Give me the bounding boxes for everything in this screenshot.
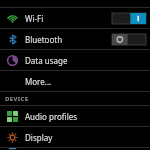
staticText: Bluetooth [25, 34, 112, 45]
staticText: Data usage [25, 55, 150, 66]
staticText: More... [25, 76, 150, 87]
button[interactable]: Toggle off [112, 34, 146, 45]
button[interactable]: More... [0, 71, 150, 91]
button[interactable] [0, 148, 150, 150]
button[interactable]: Display [0, 127, 150, 147]
staticText: DEVICE [5, 95, 29, 103]
button[interactable]: Audio profiles [0, 106, 150, 126]
button[interactable]: Bluetooth [0, 29, 150, 49]
staticText: Audio profiles [25, 111, 150, 122]
staticText: Display [25, 132, 150, 143]
button[interactable]: Toggle on [112, 13, 146, 24]
staticText: Wi-Fi [25, 13, 112, 24]
button[interactable]: Data usage [0, 50, 150, 70]
button[interactable]: Wi-Fi [0, 8, 150, 28]
